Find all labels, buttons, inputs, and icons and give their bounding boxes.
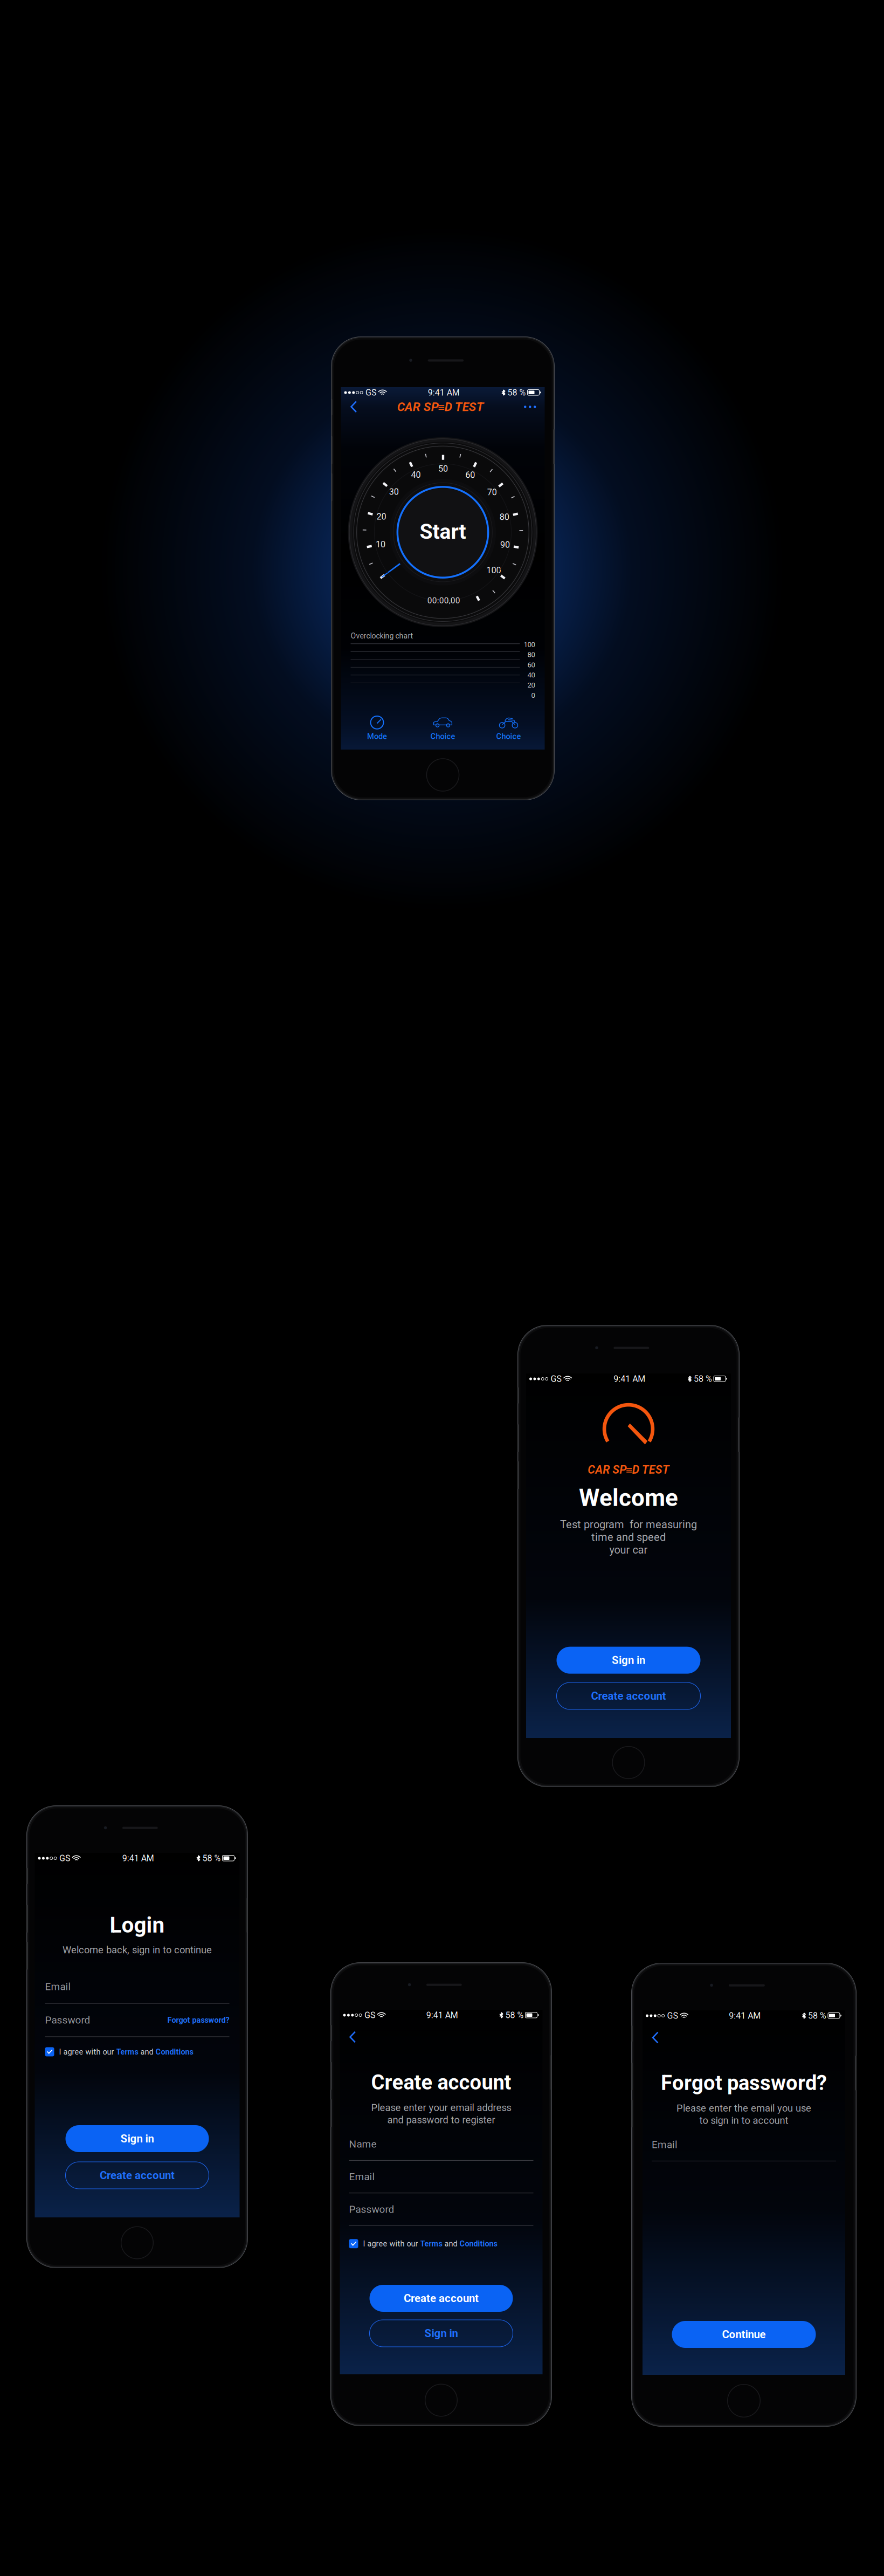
staticText: 10: [376, 539, 385, 549]
staticText: I agree with our: [59, 2047, 116, 2056]
button[interactable]: Back: [344, 2028, 361, 2046]
staticText: D TEST: [445, 400, 484, 414]
staticText: Welcome back, sign in to continue: [63, 1944, 212, 1956]
staticText: 40: [411, 470, 421, 480]
staticText: CAR SP: [588, 1463, 626, 1476]
staticText: Email: [45, 1981, 71, 1993]
staticText: 9:41 AM: [426, 2010, 458, 2020]
staticText: 0: [531, 691, 535, 699]
button[interactable]: Sign in: [370, 2320, 513, 2347]
staticText: and: [138, 2047, 156, 2056]
staticText: time and speed: [591, 1531, 666, 1544]
staticText: Continue: [722, 2328, 766, 2341]
staticText: Name: [349, 2138, 377, 2150]
staticText: to sign in to account: [699, 2115, 788, 2126]
button[interactable]: Continue: [672, 2321, 816, 2348]
staticText: Email: [349, 2171, 375, 2183]
staticText: 100: [524, 640, 535, 649]
staticText: 60: [465, 470, 475, 480]
staticText: Create account: [371, 2070, 511, 2095]
staticText: 20: [376, 511, 386, 522]
staticText: and: [442, 2239, 460, 2248]
button[interactable]: Create account: [370, 2285, 513, 2312]
button[interactable]: I agree with our: [349, 2239, 533, 2248]
staticText: Terms: [420, 2239, 442, 2248]
staticText: 30: [389, 487, 399, 497]
staticText: 58 %: [202, 1853, 221, 1863]
staticText: Password: [349, 2203, 394, 2215]
button[interactable]: Back: [646, 2029, 664, 2047]
staticText: 58 %: [808, 2011, 826, 2021]
staticText: Create account: [100, 2169, 175, 2182]
staticText: 00:00,00: [427, 595, 460, 605]
button[interactable]: Choice: [476, 715, 541, 741]
staticText: 58 %: [694, 1374, 712, 1384]
button[interactable]: Choice: [410, 715, 476, 741]
button[interactable]: I agree with our: [45, 2047, 229, 2056]
staticText: Email: [652, 2139, 678, 2151]
staticText: GS: [364, 2010, 376, 2020]
button[interactable]: Back: [345, 398, 362, 416]
staticText: Choice: [430, 732, 455, 741]
staticText: and password to register: [387, 2114, 495, 2126]
staticText: Forgot password?: [661, 2071, 827, 2095]
staticText: 50: [438, 464, 448, 474]
staticText: Create account: [591, 1689, 666, 1702]
staticText: Conditions: [460, 2239, 497, 2248]
staticText: Login: [110, 1912, 165, 1938]
staticText: 58 %: [507, 388, 526, 398]
staticText: 9:41 AM: [729, 2011, 761, 2021]
staticText: Sign in: [612, 1654, 645, 1667]
staticText: Welcome: [579, 1484, 678, 1512]
staticText: 70: [487, 487, 497, 497]
staticText: GS: [59, 1853, 71, 1863]
staticText: I agree with our: [363, 2239, 420, 2248]
staticText: GS: [366, 388, 377, 398]
staticText: 58 %: [505, 2010, 524, 2020]
staticText: 80: [527, 650, 535, 659]
staticText: 9:41 AM: [122, 1853, 154, 1863]
button[interactable]: More options: [519, 400, 541, 414]
staticText: 9:41 AM: [614, 1374, 645, 1384]
staticText: Overclocking chart: [351, 631, 413, 640]
button[interactable]: Sign in: [65, 2125, 209, 2152]
staticText: your car: [609, 1544, 648, 1556]
staticText: 80: [500, 512, 509, 522]
staticText: Mode: [367, 732, 387, 741]
staticText: 20: [527, 681, 535, 689]
button[interactable]: Create account: [557, 1682, 700, 1709]
staticText: Choice: [496, 732, 521, 741]
staticText: Sign in: [120, 2132, 154, 2145]
staticText: Password: [45, 2014, 90, 2026]
staticText: Forgot password?: [167, 2015, 229, 2025]
button[interactable]: Sign in: [557, 1647, 700, 1674]
staticText: 100: [486, 565, 501, 575]
staticText: 40: [527, 671, 535, 679]
staticText: GS: [551, 1374, 562, 1384]
staticText: Please enter the email you use: [676, 2102, 811, 2114]
button[interactable]: Mode: [344, 715, 410, 741]
staticText: Sign in: [424, 2327, 458, 2340]
staticText: 60: [527, 661, 535, 669]
staticText: GS: [667, 2011, 678, 2021]
staticText: 90: [500, 540, 510, 550]
staticText: D TEST: [632, 1463, 669, 1476]
staticText: Create account: [404, 2292, 479, 2305]
staticText: CAR SP: [397, 400, 439, 414]
staticText: Terms: [116, 2047, 138, 2056]
staticText: Test program for measuring: [560, 1518, 697, 1531]
staticText: 9:41 AM: [428, 388, 460, 398]
button[interactable]: Forgot password?: [167, 2015, 229, 2025]
staticText: Start: [420, 519, 466, 544]
staticText: Please enter your email address: [371, 2102, 511, 2114]
staticText: Conditions: [156, 2047, 193, 2056]
button[interactable]: Create account: [65, 2162, 209, 2189]
